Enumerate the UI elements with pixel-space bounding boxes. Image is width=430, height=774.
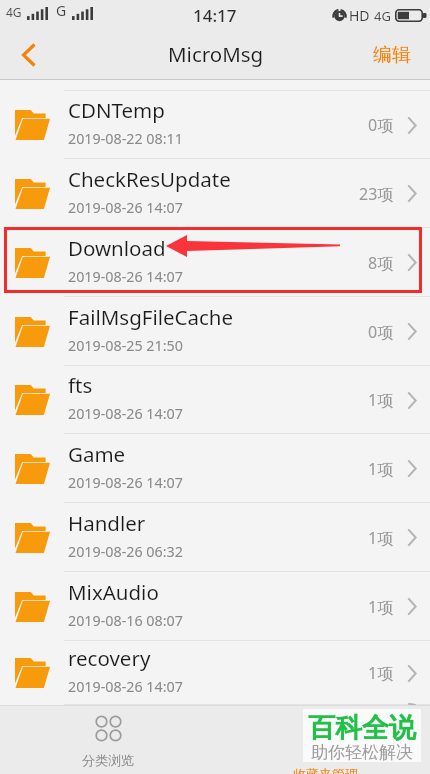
staticText: FailMsgFileCache xyxy=(68,303,234,331)
button[interactable]: FailMsgFileCache xyxy=(0,297,430,366)
staticText: 1项 xyxy=(368,596,394,618)
staticText: 0项 xyxy=(368,114,394,136)
staticText: CDNTemp xyxy=(68,96,165,124)
staticText: 1项 xyxy=(368,389,394,411)
staticText: 收藏夹管理 xyxy=(293,766,358,774)
staticText: 1项 xyxy=(368,662,394,684)
staticText: 2019-08-26 14:07 xyxy=(68,404,183,423)
button[interactable]: Handler xyxy=(0,503,430,572)
button[interactable]: fts xyxy=(0,366,430,434)
button[interactable]: 编辑 xyxy=(354,30,430,80)
staticText: 助你轻松解决 xyxy=(311,742,413,763)
staticText: Handler xyxy=(68,509,146,537)
button[interactable]: Game xyxy=(0,434,430,503)
staticText: 2019-08-26 14:07 xyxy=(68,677,183,696)
staticText: 8项 xyxy=(368,252,394,274)
staticText: recovery xyxy=(68,644,151,672)
staticText: Game xyxy=(68,440,126,468)
staticText: 23项 xyxy=(359,183,394,205)
staticText: 编辑 xyxy=(373,43,411,67)
staticText: 2019-08-26 14:07 xyxy=(68,473,183,492)
staticText: 1项 xyxy=(368,458,394,480)
staticText: 2019-08-26 14:07 xyxy=(68,267,183,286)
staticText: 百科全说 xyxy=(308,711,416,745)
staticText: MicroMsg xyxy=(168,40,264,68)
staticText: 4G xyxy=(374,7,391,25)
staticText: 分类浏览 xyxy=(82,752,134,768)
staticText: G xyxy=(56,1,67,20)
button[interactable]: recovery xyxy=(0,641,430,705)
staticText: 2019-08-26 14:07 xyxy=(68,198,183,217)
staticText: fts xyxy=(68,371,93,399)
staticText: 0项 xyxy=(368,321,394,343)
staticText: 2019-08-26 06:32 xyxy=(68,542,183,561)
staticText: 4G xyxy=(6,4,22,20)
button[interactable]: Back xyxy=(0,30,58,80)
button[interactable]: 分类浏览 xyxy=(68,705,148,774)
staticText: Download xyxy=(68,234,166,262)
staticText: 14:17 xyxy=(193,4,237,27)
staticText: HD xyxy=(349,6,370,25)
staticText: 1项 xyxy=(368,527,394,549)
button[interactable]: MixAudio xyxy=(0,572,430,641)
button[interactable]: Download xyxy=(0,228,430,297)
staticText: 2019-08-16 08:07 xyxy=(68,611,183,630)
staticText: CheckResUpdate xyxy=(68,165,231,193)
staticText: 2019-08-25 21:50 xyxy=(68,336,183,355)
button[interactable]: CDNTemp xyxy=(0,91,430,159)
staticText: 2019-08-22 08:11 xyxy=(68,129,183,148)
staticText: MixAudio xyxy=(68,578,159,606)
button[interactable]: CheckResUpdate xyxy=(0,159,430,228)
